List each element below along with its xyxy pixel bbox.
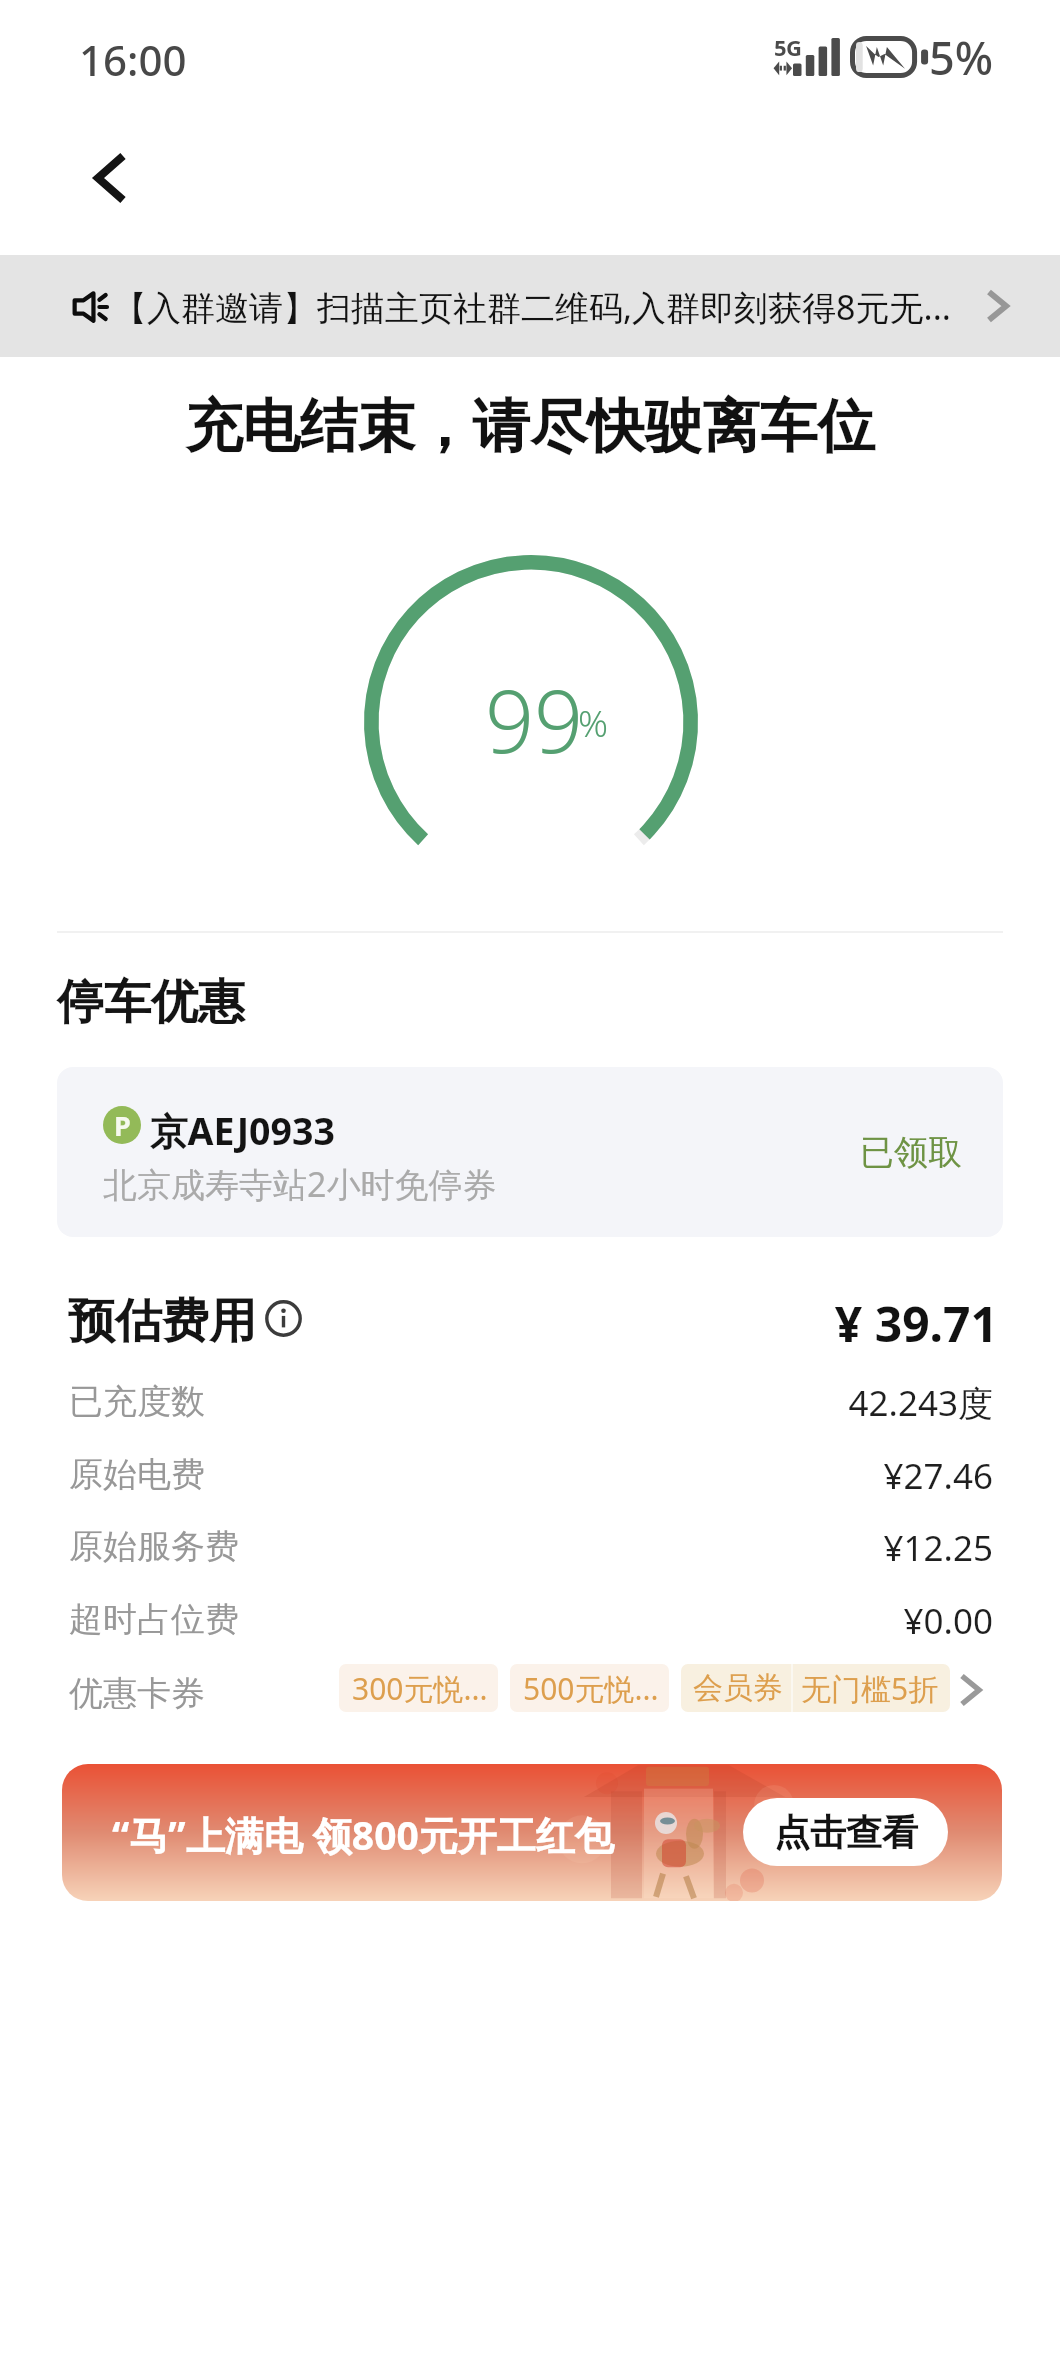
button[interactable]: 【入群邀请】扫描主页社群二维码,入群即刻获得8元无... [0, 255, 1060, 357]
staticText: 京AEJ0933 [150, 1105, 335, 1156]
staticText: 原始电费 [69, 1453, 205, 1496]
staticText: 99 [485, 661, 584, 778]
button[interactable]: 会员券 [681, 1664, 950, 1712]
staticText: 原始服务费 [69, 1525, 239, 1568]
staticText: “马”上满电 领800元开工红包 [112, 1808, 614, 1861]
button[interactable]: 300元悦... [339, 1664, 498, 1712]
staticText: 北京成寿寺站2小时免停券 [103, 1161, 497, 1207]
staticText: 会员券 [693, 1669, 783, 1707]
staticText: 已充度数 [69, 1380, 205, 1423]
staticText: 5% [929, 27, 994, 88]
staticText: 300元悦... [352, 1668, 488, 1709]
staticText: % [578, 697, 609, 747]
staticText: 500元悦... [523, 1668, 659, 1709]
staticText: 已领取 [860, 1131, 962, 1174]
staticText: 5G [774, 32, 802, 62]
staticText: 无门槛5折 [801, 1668, 939, 1709]
staticText: 停车优惠 [57, 973, 245, 1032]
button[interactable]: P [57, 1067, 1003, 1237]
button[interactable]: More coupons [942, 1662, 998, 1718]
staticText: 点击查看 [774, 1810, 918, 1855]
staticText: P [114, 1107, 131, 1144]
button[interactable]: Back [62, 134, 150, 222]
staticText: 充电结束，请尽快驶离车位 [0, 391, 1060, 463]
staticText: 超时占位费 [69, 1598, 239, 1641]
staticText: ¥12.25 [0, 1524, 993, 1572]
staticText: 42.243度 [0, 1379, 993, 1427]
staticText: 【入群邀请】扫描主页社群二维码,入群即刻获得8元无... [113, 284, 951, 330]
staticText: ¥0.00 [0, 1597, 993, 1645]
staticText: 16:00 [79, 31, 187, 88]
button[interactable]: 点击查看 [743, 1798, 948, 1866]
button[interactable]: “马”上满电 领800元开工红包 [62, 1764, 1002, 1901]
staticText: 预估费用 [68, 1292, 256, 1351]
staticText: ¥ 39.71 [0, 1291, 998, 1356]
staticText: 优惠卡券 [69, 1672, 205, 1715]
staticText: ¥27.46 [0, 1452, 993, 1500]
button[interactable]: 500元悦... [510, 1664, 669, 1712]
button[interactable]: Fee info [262, 1297, 304, 1339]
